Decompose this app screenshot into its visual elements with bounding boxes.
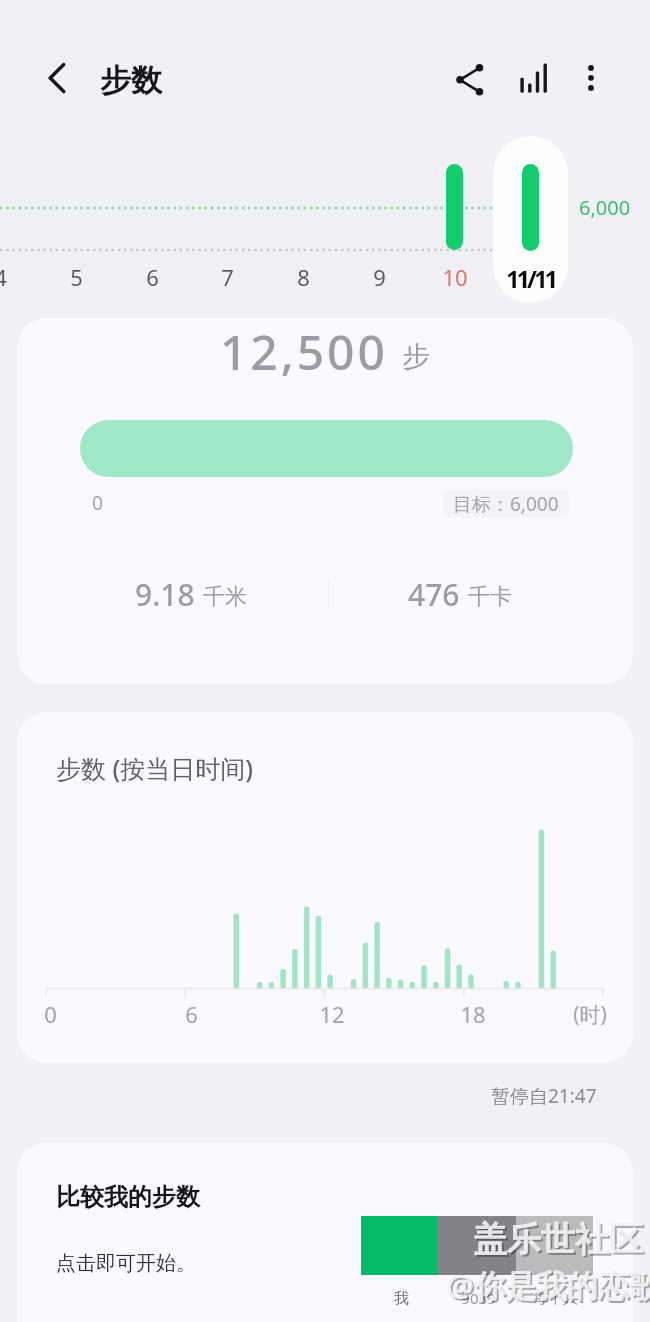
staticText: 10	[442, 262, 468, 292]
button[interactable]: Share	[444, 54, 492, 102]
button[interactable]: More options	[568, 54, 616, 102]
staticText: 千米	[203, 583, 247, 611]
staticText: 9	[373, 262, 386, 292]
button[interactable]: 比较我的步数	[17, 1143, 633, 1322]
staticText: 点击即可开始。	[56, 1251, 196, 1276]
button[interactable]: 12,500	[17, 318, 633, 684]
staticText: 18	[460, 999, 486, 1029]
staticText: 0	[92, 490, 103, 516]
staticText: 7	[221, 262, 234, 292]
staticText: (时)	[573, 1000, 607, 1029]
button[interactable]: 步数 (按当日时间)	[17, 712, 633, 1063]
staticText: 6,000	[579, 194, 631, 221]
staticText: 盖乐世社区	[473, 1218, 643, 1261]
staticText: 12,500	[220, 319, 388, 384]
staticText: 4	[0, 262, 7, 292]
button[interactable]: Statistics	[508, 54, 556, 102]
staticText: 目标：6,000	[453, 491, 559, 517]
staticText: 我	[394, 1289, 409, 1308]
button[interactable]	[493, 136, 568, 303]
staticText: 8	[297, 262, 310, 292]
staticText: 11/11	[506, 262, 555, 295]
staticText: 盖乐世社区	[475, 1220, 645, 1263]
staticText: 暂停自21:47	[491, 1083, 597, 1109]
staticText: @你是我的恋歌	[446, 1264, 650, 1306]
staticText: 千卡	[468, 583, 512, 611]
staticText: 步数	[100, 61, 162, 100]
staticText: 6	[185, 999, 198, 1029]
staticText: 比较我的步数	[56, 1182, 200, 1212]
staticText: 步数 (按当日时间)	[56, 751, 254, 785]
staticText: 6	[146, 262, 159, 292]
staticText: 步	[402, 339, 430, 374]
staticText: 9039	[461, 1288, 496, 1308]
staticText: 476	[408, 574, 460, 615]
staticText: 0	[44, 999, 57, 1029]
staticText: 每个人	[533, 1289, 578, 1308]
button[interactable]: Back	[33, 54, 81, 102]
staticText: 5	[70, 262, 83, 292]
staticText: @你是我的恋歌	[448, 1266, 650, 1308]
staticText: 9.18	[135, 574, 195, 615]
staticText: 12	[319, 999, 345, 1029]
